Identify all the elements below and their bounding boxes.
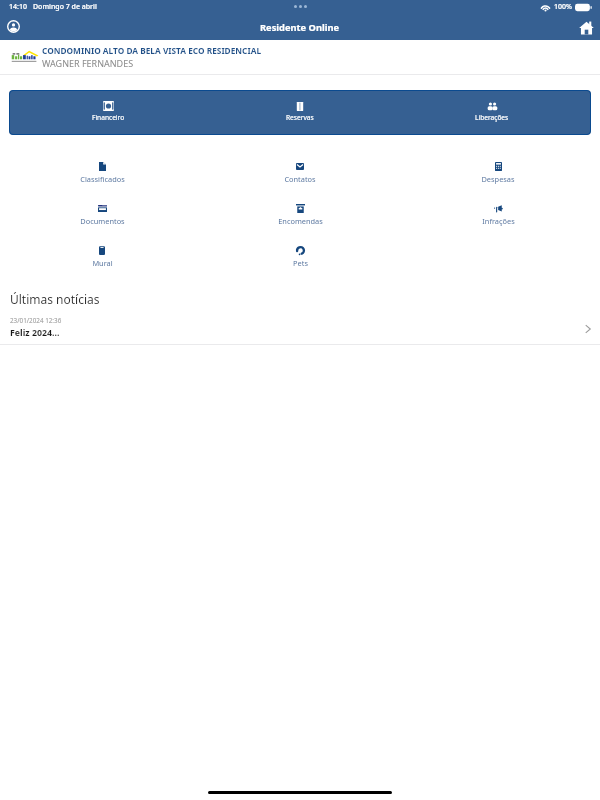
button[interactable]: Perfil bbox=[7, 20, 20, 33]
staticText: Reservas bbox=[286, 113, 314, 122]
staticText: WAGNER FERNANDES bbox=[42, 57, 134, 69]
button[interactable]: Infrações bbox=[399, 195, 597, 226]
staticText: Financeiro bbox=[92, 113, 125, 122]
button[interactable]: 23/01/2024 12:36 bbox=[0, 314, 600, 344]
button[interactable]: Contatos bbox=[201, 153, 399, 184]
button[interactable]: CONDOMINIO ALTO DA BELA VISTA ECO RESIDE… bbox=[0, 40, 600, 74]
button[interactable]: Financeiro bbox=[12, 90, 204, 135]
button[interactable]: Pets bbox=[201, 237, 399, 268]
staticText: Contatos bbox=[284, 174, 316, 184]
staticText: Despesas bbox=[481, 174, 515, 184]
button[interactable]: Mural bbox=[3, 237, 201, 268]
staticText: Classificados bbox=[80, 174, 125, 184]
staticText: Documentos bbox=[80, 216, 125, 226]
staticText: Liberações bbox=[475, 113, 509, 122]
staticText: 100% bbox=[554, 2, 572, 12]
staticText: 23/01/2024 12:36 bbox=[10, 316, 62, 325]
button[interactable]: Liberações bbox=[396, 90, 588, 135]
staticText: Residente Online bbox=[260, 21, 340, 34]
button[interactable]: Despesas bbox=[399, 153, 597, 184]
button[interactable]: Encomendas bbox=[201, 195, 399, 226]
button[interactable]: Reservas bbox=[204, 90, 396, 135]
button[interactable]: Documentos bbox=[3, 195, 201, 226]
staticText: Infrações bbox=[482, 216, 515, 226]
button[interactable]: Classificados bbox=[3, 153, 201, 184]
staticText: Pets bbox=[293, 258, 308, 268]
staticText: Domingo 7 de abril bbox=[33, 2, 97, 12]
staticText: Encomendas bbox=[278, 216, 323, 226]
staticText: Feliz 2024... bbox=[10, 327, 60, 339]
staticText: Últimas notícias bbox=[10, 291, 100, 307]
button[interactable]: Início bbox=[579, 20, 594, 35]
staticText: 14:10 bbox=[9, 2, 27, 12]
staticText: CONDOMINIO ALTO DA BELA VISTA ECO RESIDE… bbox=[42, 45, 262, 56]
staticText: Mural bbox=[92, 258, 113, 268]
